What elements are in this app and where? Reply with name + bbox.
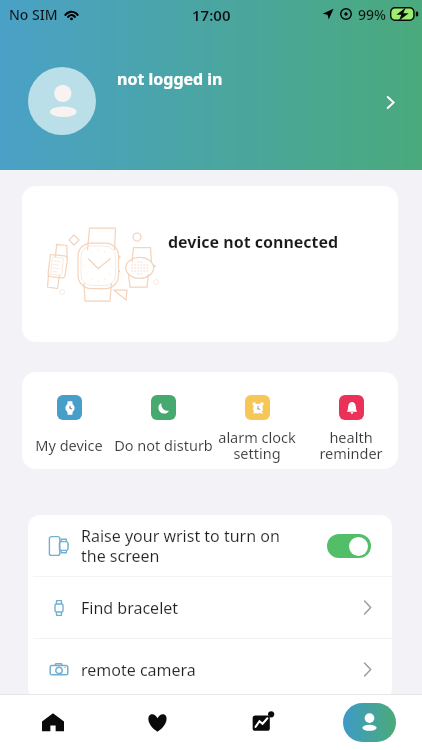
button[interactable]: health reminder	[304, 372, 398, 469]
button[interactable]: My device	[22, 372, 116, 469]
staticText: device not connected	[168, 231, 339, 253]
staticText: Raise your wrist to turn on the screen	[81, 525, 280, 566]
staticText: health reminder	[319, 427, 383, 463]
staticText: Find bracelet	[81, 597, 179, 619]
staticText: remote camera	[81, 659, 196, 681]
button[interactable]: Profile avatar	[28, 67, 96, 135]
button[interactable]: Statistics	[210, 694, 316, 750]
staticText: alarm clock setting	[218, 427, 296, 463]
button[interactable]: Profile	[343, 703, 396, 742]
button[interactable]: Find bracelet	[28, 577, 392, 638]
staticText: not logged in	[117, 68, 223, 90]
staticText: 99%	[358, 5, 386, 24]
button[interactable]: Do not disturb	[116, 372, 210, 469]
staticText: Do not disturb	[114, 435, 213, 455]
staticText: 17:00	[192, 5, 231, 25]
button[interactable]: Account details	[378, 90, 402, 114]
button[interactable]: Toggle raise to wake	[327, 534, 371, 558]
staticText: No SIM	[9, 5, 58, 24]
button[interactable]: Health	[105, 694, 210, 750]
button[interactable]: Home	[0, 694, 105, 750]
button[interactable]: device not connected	[22, 186, 398, 342]
button[interactable]: Raise your wrist to turn on the screen	[28, 515, 392, 576]
button[interactable]: remote camera	[28, 639, 392, 700]
staticText: My device	[35, 435, 103, 455]
button[interactable]: alarm clock setting	[210, 372, 304, 469]
